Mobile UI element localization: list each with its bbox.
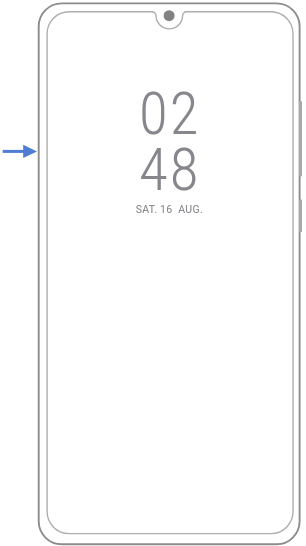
button[interactable]: Phone handset illustration, clock screen [0,0,306,546]
